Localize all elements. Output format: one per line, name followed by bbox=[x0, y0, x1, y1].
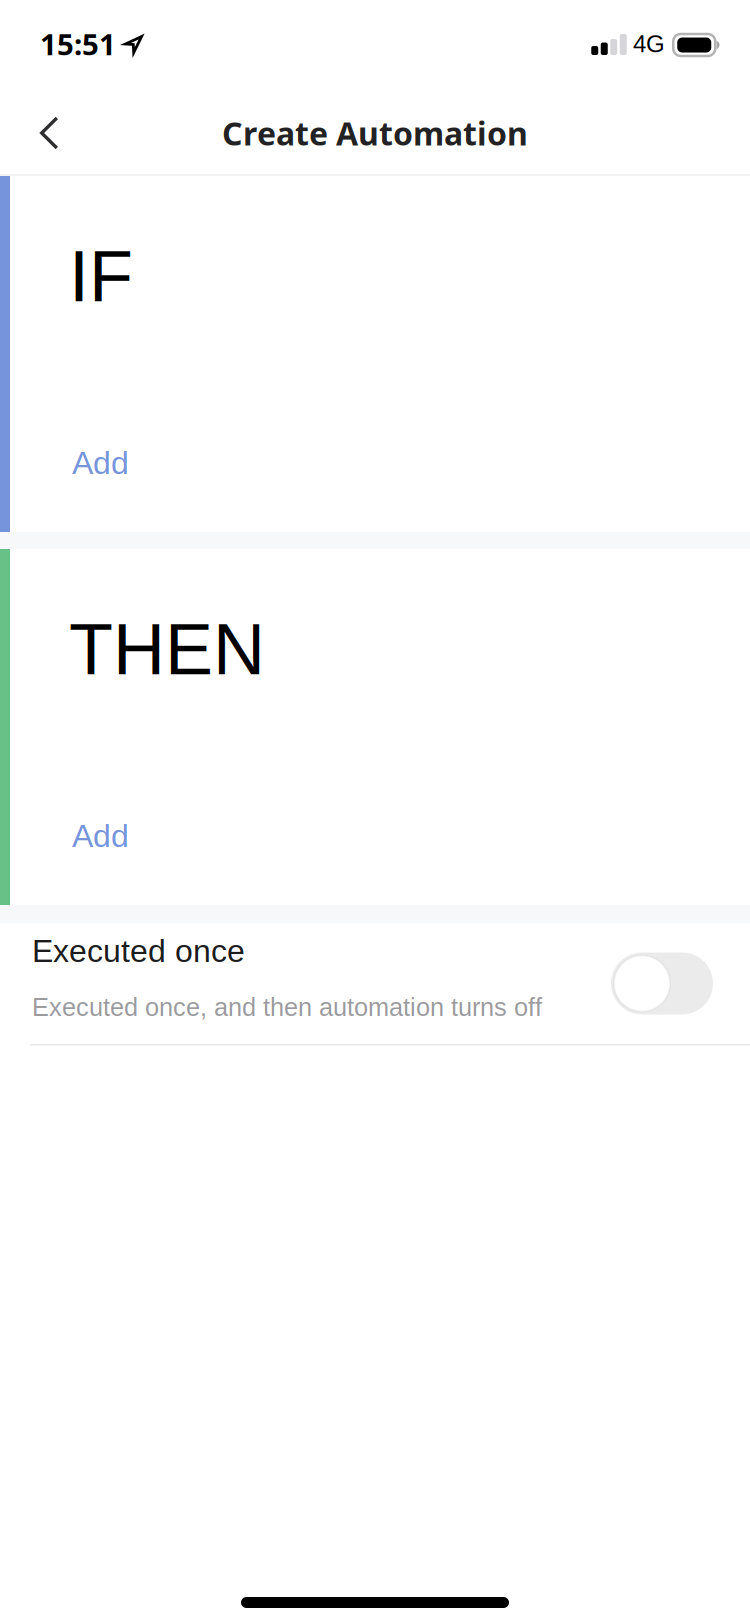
staticText: Add bbox=[72, 445, 129, 481]
staticText: Add bbox=[72, 818, 129, 854]
button[interactable]: Executed once bbox=[611, 952, 713, 1014]
staticText: 15:51 bbox=[40, 24, 116, 64]
staticText: Create Automation bbox=[222, 111, 528, 155]
staticText: Executed once bbox=[32, 933, 245, 969]
staticText: Executed once, and then automation turns… bbox=[32, 993, 542, 1021]
staticText: THEN bbox=[69, 609, 265, 689]
staticText: 4G bbox=[633, 30, 665, 57]
button[interactable]: Add bbox=[10, 427, 159, 498]
button[interactable]: Back bbox=[0, 90, 81, 176]
button[interactable]: Add bbox=[10, 800, 159, 871]
staticText: IF bbox=[69, 236, 133, 316]
